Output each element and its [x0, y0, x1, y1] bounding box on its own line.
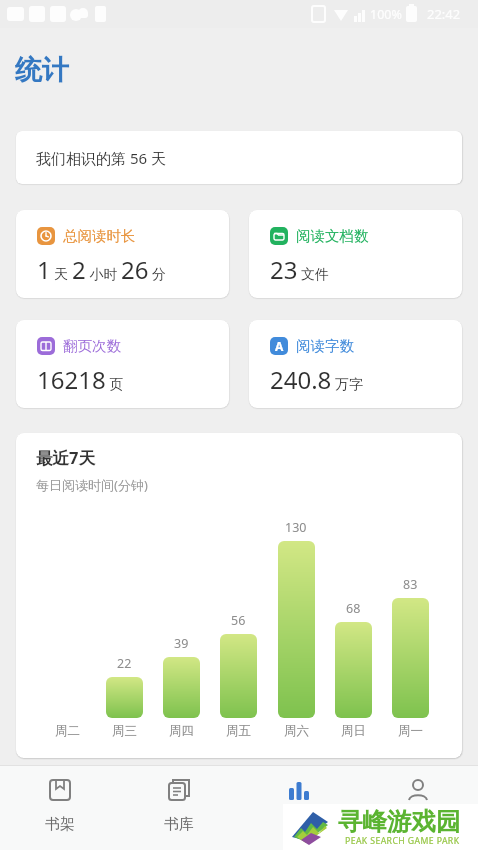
staticText: 68 — [346, 600, 361, 616]
button[interactable]: 书架 — [1, 765, 119, 850]
button[interactable]: 我的 — [359, 765, 477, 850]
staticText: 39 — [174, 635, 189, 651]
staticText: 最近7天 — [36, 446, 95, 469]
staticText: 我们相识的第 56 天 — [36, 148, 166, 168]
staticText: A — [275, 338, 284, 354]
staticText: 书库 — [164, 815, 194, 834]
staticText: 周日 — [341, 723, 366, 739]
staticText: 寻峰游戏园 — [338, 806, 461, 836]
staticText: 100% — [370, 6, 402, 23]
staticText: 1 天 2 小时 26 分 — [37, 253, 167, 286]
staticText: PEAK SEARCH GAME PARK — [345, 835, 460, 847]
button[interactable]: 总阅读时长 — [16, 210, 229, 298]
staticText: 56 — [231, 612, 246, 628]
staticText: 书架 — [45, 815, 75, 834]
staticText: 阅读字数 — [296, 337, 354, 355]
staticText: 22 — [117, 655, 132, 671]
button[interactable]: A — [249, 320, 462, 408]
staticText: 240.8 万字 — [270, 363, 363, 396]
button[interactable]: 统计 — [240, 765, 358, 850]
staticText: 周四 — [169, 723, 194, 739]
staticText: 130 — [285, 519, 307, 535]
staticText: 总阅读时长 — [63, 227, 136, 245]
staticText: 周六 — [284, 723, 309, 739]
staticText: 周三 — [112, 723, 137, 739]
staticText: 22:42 — [427, 5, 461, 23]
staticText: 我的 — [403, 815, 433, 834]
button[interactable]: 阅读文档数 — [249, 210, 462, 298]
button[interactable]: 书库 — [120, 765, 238, 850]
staticText: 周二 — [55, 723, 80, 739]
staticText: 83 — [403, 576, 418, 592]
staticText: 周五 — [226, 723, 251, 739]
staticText: 统计 — [15, 53, 69, 87]
staticText: 23 文件 — [270, 253, 330, 286]
staticText: 每日阅读时间(分钟) — [36, 476, 148, 494]
staticText: 周一 — [398, 723, 423, 739]
staticText: 统计 — [284, 815, 314, 834]
button[interactable]: 我们相识的第 56 天 — [16, 131, 462, 184]
staticText: 翻页次数 — [63, 337, 121, 355]
staticText: 16218 页 — [37, 363, 124, 396]
button[interactable]: 翻页次数 — [16, 320, 229, 408]
staticText: 阅读文档数 — [296, 227, 369, 245]
